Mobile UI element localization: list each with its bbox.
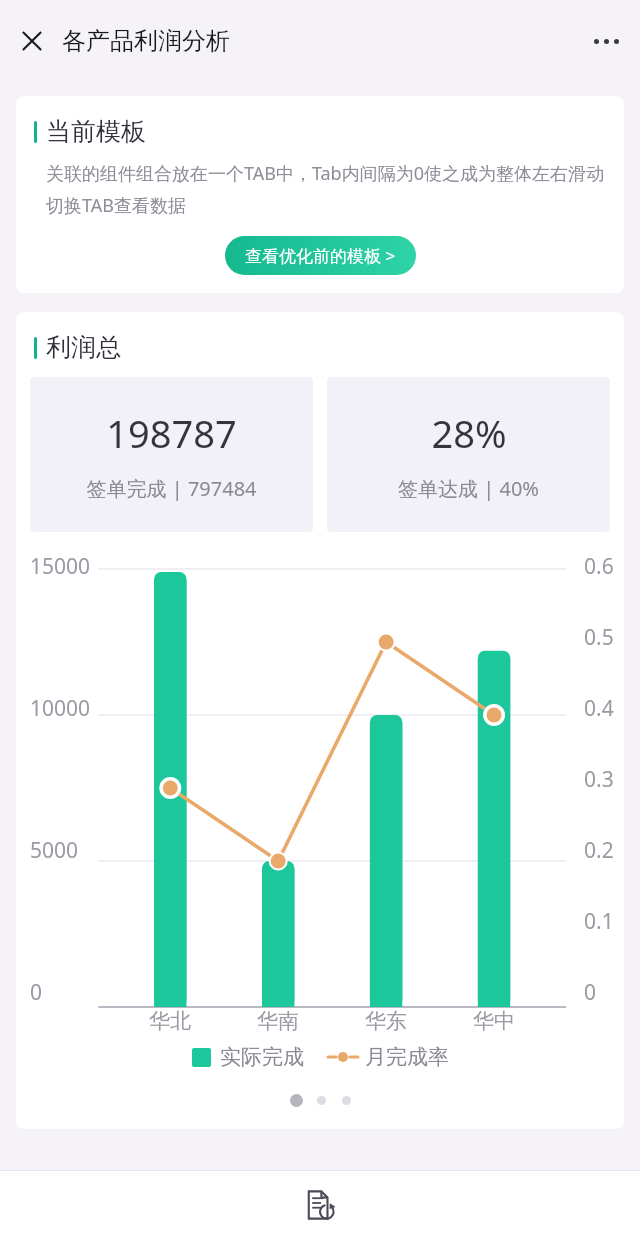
staticText: 10000: [30, 694, 91, 723]
staticText: 0.5: [584, 623, 614, 652]
staticText: 15000: [30, 552, 91, 581]
button[interactable]: Close: [8, 17, 56, 65]
staticText: 华南: [257, 1008, 299, 1034]
staticText: 关联的组件组合放在一个TAB中，Tab内间隔为0使之成为整体左右滑动切换TAB查…: [46, 161, 604, 218]
button[interactable]: More options: [582, 17, 630, 65]
staticText: 0.2: [584, 836, 614, 865]
button[interactable]: 198787: [30, 377, 313, 532]
staticText: 0.1: [584, 907, 614, 936]
staticText: 0.6: [584, 552, 614, 581]
staticText: 华中: [473, 1008, 515, 1034]
staticText: 各产品利润分析: [62, 26, 230, 56]
staticText: 5000: [30, 836, 79, 865]
button[interactable]: 实际完成: [188, 1040, 308, 1074]
staticText: 当前模板: [46, 116, 146, 147]
staticText: 198787: [106, 407, 237, 459]
staticText: 月完成率: [365, 1044, 449, 1070]
button[interactable]: [317, 1096, 326, 1105]
button[interactable]: [290, 1094, 303, 1107]
staticText: 0.3: [584, 765, 614, 794]
staticText: 签单达成 | 40%: [398, 475, 539, 502]
button[interactable]: [342, 1096, 351, 1105]
staticText: 签单完成 | 797484: [86, 475, 257, 502]
staticText: 查看优化前的模板 >: [245, 244, 396, 267]
button[interactable]: 月完成率: [324, 1040, 453, 1074]
staticText: 实际完成: [220, 1044, 304, 1070]
staticText: 0: [584, 978, 597, 1007]
staticText: 28%: [431, 407, 507, 459]
staticText: 华东: [365, 1008, 407, 1034]
staticText: 0.4: [584, 694, 614, 723]
staticText: 利润总: [46, 332, 121, 363]
button[interactable]: 查看优化前的模板 >: [225, 236, 416, 275]
staticText: 0: [30, 978, 43, 1007]
button[interactable]: Report: [294, 1179, 346, 1231]
button[interactable]: 28%: [327, 377, 610, 532]
staticText: 华北: [149, 1008, 191, 1034]
